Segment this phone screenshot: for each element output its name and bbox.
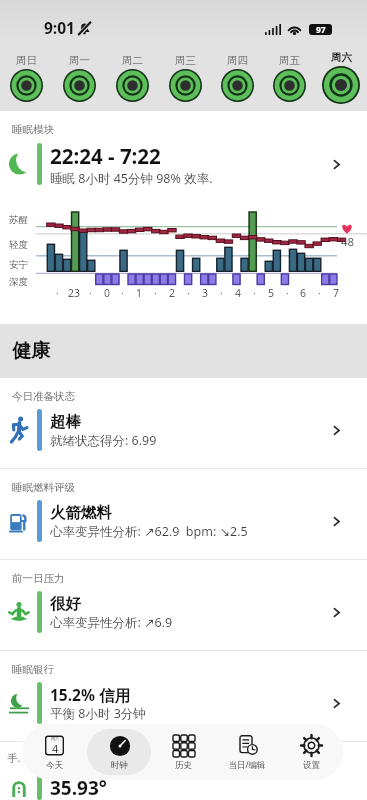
staticText: 周一 <box>69 54 90 67</box>
staticText: 轻度 <box>9 239 28 251</box>
staticText: 超棒 <box>50 412 81 432</box>
staticText: 7 <box>333 286 340 300</box>
staticText: 苏醒 <box>9 214 28 226</box>
staticText: · <box>286 286 289 300</box>
button[interactable]: 15.2% 信用 <box>0 680 367 726</box>
button[interactable]: 35.93° <box>0 775 367 800</box>
staticText: 手. <box>7 751 21 765</box>
staticText: 23 <box>68 286 81 300</box>
button[interactable]: 火箭燃料 <box>0 498 367 544</box>
staticText: 0 <box>104 286 111 300</box>
staticText: 当日/编辑 <box>228 759 266 771</box>
staticText: 安宁 <box>9 259 28 271</box>
staticText: 设置 <box>303 760 320 771</box>
button[interactable]: 周三 <box>159 44 211 111</box>
staticText: 睡眠模块 <box>12 123 54 136</box>
staticText: 健康 <box>12 339 50 363</box>
staticText: 6 <box>300 286 307 300</box>
staticText: · <box>89 286 92 300</box>
staticText: 5 <box>268 286 275 300</box>
button[interactable]: 超棒 <box>0 407 367 453</box>
staticText: 前一日压力 <box>12 572 65 585</box>
staticText: 22:24 - 7:22 <box>50 142 161 170</box>
staticText: 睡眠银行 <box>12 663 54 676</box>
staticText: · <box>56 286 59 300</box>
button[interactable]: 周日 <box>0 44 53 111</box>
button[interactable]: 周一 <box>53 44 106 111</box>
staticText: 今天 <box>46 760 63 771</box>
other: History <box>173 735 195 757</box>
staticText: 3 <box>202 286 209 300</box>
button[interactable]: Today <box>22 729 87 775</box>
staticText: 2 <box>169 286 176 300</box>
staticText: · <box>121 286 124 300</box>
button[interactable]: Clock <box>87 729 151 775</box>
staticText: 周三 <box>175 54 196 67</box>
other: Clock <box>109 735 131 757</box>
button[interactable]: 周六 <box>315 44 367 111</box>
button[interactable]: 22:24 - 7:22 <box>0 141 367 187</box>
button[interactable]: History <box>151 729 215 775</box>
staticText: 平衡 8小时 3分钟 <box>50 705 146 722</box>
other: Today <box>44 735 65 756</box>
other: Settings <box>301 735 322 756</box>
staticText: 4 <box>52 741 59 756</box>
staticText: 35.93° <box>50 775 107 800</box>
staticText: · <box>318 286 321 300</box>
button[interactable]: Edit day <box>215 729 279 775</box>
staticText: · <box>253 286 256 300</box>
staticText: · <box>220 286 223 300</box>
staticText: 时钟 <box>111 760 128 771</box>
button[interactable]: 周五 <box>263 44 315 111</box>
staticText: · <box>187 286 190 300</box>
staticText: · <box>154 286 157 300</box>
staticText: 火箭燃料 <box>50 503 112 523</box>
button[interactable]: 很好 <box>0 589 367 635</box>
button[interactable]: 周二 <box>106 44 159 111</box>
button[interactable]: Settings <box>279 729 343 775</box>
staticText: 周日 <box>16 54 37 67</box>
staticText: 睡眠燃料评级 <box>12 481 75 494</box>
staticText: 4 <box>235 286 242 300</box>
staticText: 15.2% 信用 <box>50 684 130 705</box>
staticText: 周六 <box>331 51 352 64</box>
staticText: 心率变异性分析: ↗62.9 bpm: ↘2.5 <box>50 523 248 540</box>
staticText: 48 <box>341 234 355 250</box>
staticText: 历史 <box>175 760 192 771</box>
staticText: 就绪状态得分: 6.99 <box>50 432 157 449</box>
other: Silent mode <box>78 22 91 35</box>
staticText: 97 <box>316 24 326 35</box>
staticText: 1 <box>136 286 143 300</box>
staticText: 周五 <box>279 54 300 67</box>
other: Edit day <box>238 735 258 755</box>
staticText: 周六 <box>51 736 59 741</box>
staticText: 周二 <box>122 54 143 67</box>
staticText: 很好 <box>50 594 81 614</box>
staticText: 周四 <box>227 54 248 67</box>
staticText: 深度 <box>9 276 28 288</box>
staticText: 心率变异性分析: ↗6.9 <box>50 614 173 631</box>
staticText: 9:01 <box>44 17 75 38</box>
button[interactable]: 周四 <box>211 44 263 111</box>
staticText: 睡眠 8小时 45分钟 98% 效率. <box>50 170 213 187</box>
staticText: 今日准备状态 <box>12 390 75 403</box>
